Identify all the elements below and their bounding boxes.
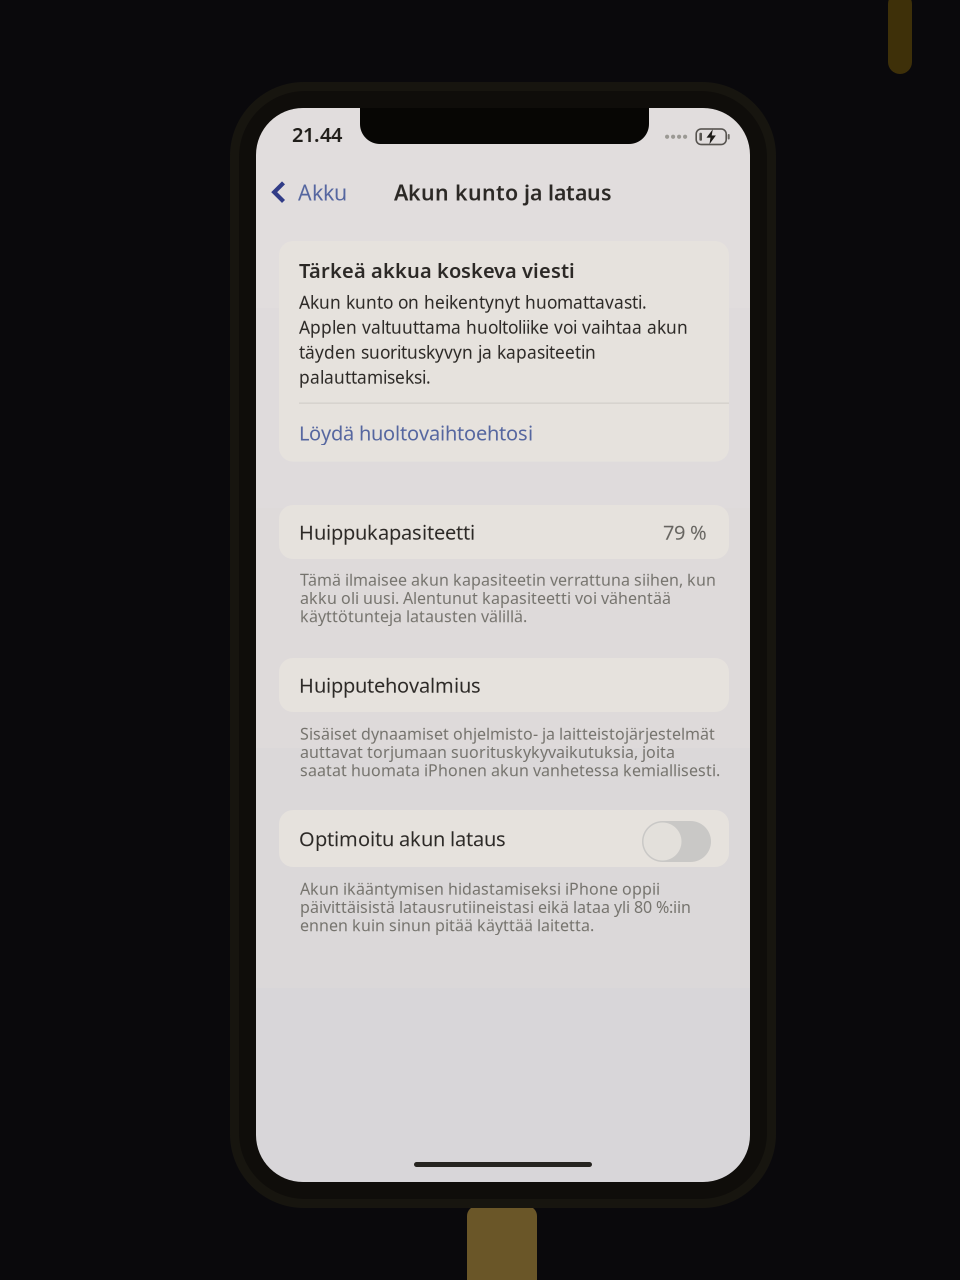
staticText: Akku xyxy=(298,178,347,206)
button[interactable]: Huippukapasiteetti xyxy=(279,505,729,559)
staticText: Sisäiset dynaamiset ohjelmisto- ja laitt… xyxy=(300,723,720,781)
button[interactable]: Löydä huoltovaihtoehtosi xyxy=(299,404,729,462)
staticText: Tämä ilmaisee akun kapasiteetin verrattu… xyxy=(300,569,716,627)
button[interactable]: Akku xyxy=(256,168,361,216)
staticText: Tärkeä akkua koskeva viesti xyxy=(299,257,575,284)
staticText: Löydä huoltovaihtoehtosi xyxy=(299,419,533,446)
staticText: 21.44 xyxy=(292,121,342,148)
staticText: Akun kunto ja lataus xyxy=(394,178,612,206)
staticText: Akun ikääntymisen hidastamiseksi iPhone … xyxy=(300,878,691,936)
staticText: Huipputehovalmius xyxy=(299,672,481,698)
staticText: 79 % xyxy=(663,519,707,545)
staticText: Akun kunto on heikentynyt huomattavasti.… xyxy=(299,291,688,389)
button[interactable]: Optimoitu akun lataus xyxy=(279,810,729,867)
staticText: Optimoitu akun lataus xyxy=(299,825,506,852)
button[interactable]: Huipputehovalmius xyxy=(279,658,729,712)
staticText: Huippukapasiteetti xyxy=(299,519,475,545)
